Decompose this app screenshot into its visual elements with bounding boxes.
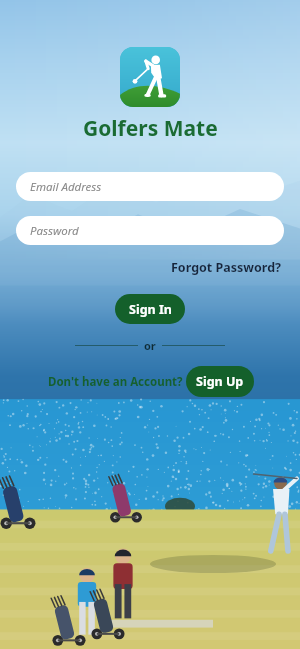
button[interactable]: Password <box>16 216 284 245</box>
staticText: Password <box>30 223 79 239</box>
staticText: Forgot Password? <box>171 259 282 276</box>
staticText: Don't have an Account? <box>48 374 183 390</box>
button[interactable]: Forgot Password? <box>169 258 284 277</box>
button[interactable]: Sign Up <box>186 366 254 397</box>
button[interactable]: Email Address <box>16 172 284 201</box>
staticText: or <box>144 338 156 353</box>
staticText: Sign In <box>129 301 172 318</box>
staticText: Email Address <box>30 179 102 195</box>
staticText: Golfers Mate <box>83 114 218 143</box>
button[interactable]: Don't have an Account? <box>46 372 185 392</box>
staticText: Sign Up <box>196 373 244 390</box>
button[interactable]: Sign In <box>115 294 185 324</box>
